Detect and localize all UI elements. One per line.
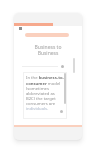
staticText: Business to Business [14,44,82,57]
button[interactable] [25,33,69,37]
staticText: In the business-to- consumer model (some… [26,75,64,111]
